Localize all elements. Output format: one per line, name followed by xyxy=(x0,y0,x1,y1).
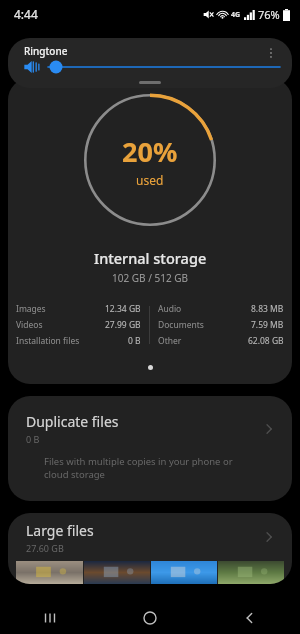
button[interactable]: Duplicate files xyxy=(8,396,292,501)
button[interactable]: 20% xyxy=(8,78,292,384)
staticText: Storage analysis xyxy=(20,40,150,63)
staticText: 0 B xyxy=(26,433,40,445)
staticText: 27.99 GB xyxy=(105,319,141,331)
staticText: 20% xyxy=(122,133,178,170)
staticText: 4G xyxy=(231,10,241,20)
other: Open duplicate files xyxy=(260,420,278,438)
button[interactable]: Home xyxy=(100,602,200,634)
staticText: 4:44 xyxy=(14,6,38,22)
button[interactable]: Back xyxy=(200,602,300,634)
staticText: Audio xyxy=(158,303,182,315)
staticText: Documents xyxy=(158,319,204,331)
staticText: 62.08 GB xyxy=(248,335,284,347)
button[interactable]: Large files xyxy=(8,513,292,584)
staticText: 76% xyxy=(258,7,280,22)
staticText: 27.60 GB xyxy=(26,542,64,554)
staticText: Files with multiple copies in your phone… xyxy=(44,455,252,481)
staticText: 7.59 MB xyxy=(251,319,284,331)
staticText: Large files xyxy=(26,521,94,540)
staticText: Internal storage xyxy=(94,248,207,268)
staticText: used xyxy=(136,172,164,188)
staticText: 0 B xyxy=(128,335,141,347)
staticText: Other xyxy=(158,335,182,347)
staticText: 102 GB / 512 GB xyxy=(112,271,188,285)
staticText: Installation files xyxy=(16,335,80,347)
other: Open large files xyxy=(260,528,278,546)
button[interactable] xyxy=(22,57,42,77)
button[interactable]: More options xyxy=(262,44,280,62)
staticText: Videos xyxy=(16,319,43,331)
staticText: Duplicate files xyxy=(26,412,119,431)
button[interactable]: Recents xyxy=(0,602,100,634)
button[interactable] xyxy=(48,59,280,75)
staticText: 12.34 GB xyxy=(105,303,141,315)
staticText: Images xyxy=(16,303,46,315)
staticText: Ringtone xyxy=(24,44,68,58)
staticText: 8.83 MB xyxy=(251,303,284,315)
